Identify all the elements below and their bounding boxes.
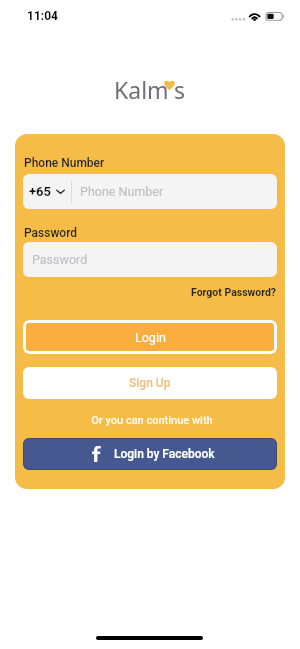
staticText: Login	[135, 330, 166, 345]
button[interactable]: Forgot Password?	[191, 286, 277, 298]
button[interactable]: Login	[23, 320, 277, 354]
staticText: Or you can continue with	[25, 414, 279, 427]
staticText: Sign Up	[129, 376, 171, 390]
button[interactable]: Password	[23, 242, 277, 277]
staticText: Login by Facebook	[114, 447, 215, 461]
button[interactable]: +65	[23, 174, 71, 209]
staticText: Phone Number	[80, 184, 164, 199]
staticText: 11:04	[27, 9, 58, 23]
other: Facebook	[92, 446, 101, 462]
staticText: Kalm	[114, 74, 169, 105]
button[interactable]: Sign Up	[23, 367, 277, 399]
button[interactable]: Facebook	[23, 438, 277, 470]
staticText: +65	[29, 184, 52, 199]
staticText: s	[174, 74, 186, 105]
staticText: Phone Number	[24, 156, 105, 170]
staticText: Password	[32, 252, 88, 267]
staticText: Password	[24, 226, 78, 240]
